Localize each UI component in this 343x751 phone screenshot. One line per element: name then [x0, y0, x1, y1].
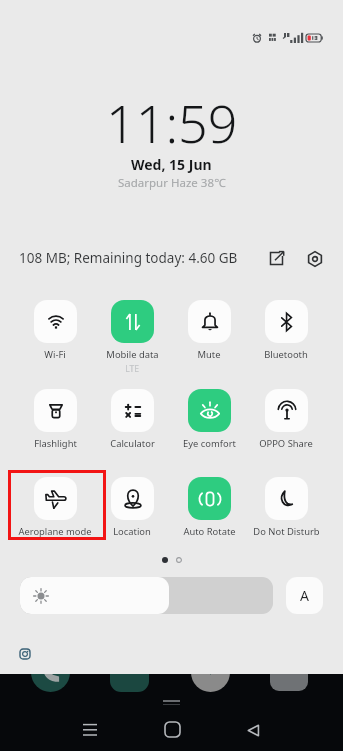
staticText: LTE: [125, 363, 139, 375]
staticText: Bluetooth: [264, 348, 308, 361]
button[interactable]: Location: [94, 477, 170, 538]
button[interactable]: Settings: [302, 246, 327, 271]
staticText: Wi-Fi: [44, 348, 66, 361]
button[interactable]: Do Not Disturb: [248, 477, 324, 538]
button[interactable]: Edit tiles: [264, 246, 289, 271]
button[interactable]: Mobile data: [94, 300, 170, 375]
staticText: A: [300, 586, 309, 605]
staticText: 108 MB; Remaining today: 4.60 GB: [19, 249, 238, 267]
staticText: Aeroplane mode: [18, 525, 92, 538]
button[interactable]: Bluetooth: [248, 300, 324, 361]
staticText: Calculator: [110, 437, 155, 450]
button[interactable]: Flashlight: [17, 389, 93, 450]
button[interactable]: Brightness: [20, 577, 273, 614]
button[interactable]: Back: [236, 713, 270, 747]
button[interactable]: Mute: [171, 300, 247, 361]
button[interactable]: Aeroplane mode: [17, 477, 93, 538]
staticText: Location: [113, 525, 151, 538]
button[interactable]: Recents: [73, 713, 107, 747]
button[interactable]: Home: [155, 712, 189, 746]
button[interactable]: Eye comfort: [171, 389, 247, 450]
staticText: 11:59: [106, 87, 238, 158]
staticText: Mute: [197, 348, 221, 361]
button[interactable]: OPPO Share: [248, 389, 324, 450]
staticText: Flashlight: [34, 437, 77, 450]
button[interactable]: Wi-Fi: [17, 300, 93, 361]
staticText: Sadarpur Haze 38℃: [118, 175, 226, 191]
staticText: Do Not Disturb: [253, 525, 320, 538]
staticText: Eye comfort: [183, 437, 236, 450]
staticText: Wed, 15 Jun: [131, 155, 212, 174]
staticText: Auto Rotate: [183, 525, 236, 538]
button[interactable]: A: [286, 577, 323, 614]
staticText: OPPO Share: [259, 437, 313, 450]
button[interactable]: Auto Rotate: [171, 477, 247, 538]
staticText: Mobile data: [106, 348, 159, 361]
button[interactable]: Calculator: [94, 389, 170, 450]
